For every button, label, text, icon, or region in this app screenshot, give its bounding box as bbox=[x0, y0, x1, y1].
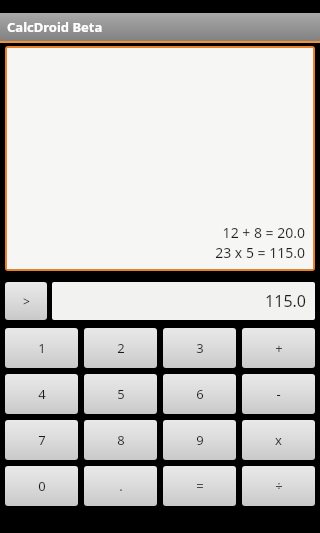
staticText: 3 bbox=[196, 339, 204, 357]
staticText: 2 bbox=[117, 339, 125, 357]
staticText: = bbox=[196, 477, 204, 495]
button[interactable]: 0 bbox=[5, 466, 78, 506]
staticText: 1 bbox=[38, 339, 46, 357]
button[interactable]: Enter expression bbox=[5, 282, 47, 320]
staticText: 6 bbox=[196, 385, 204, 403]
staticText: CalcDroid Beta bbox=[7, 18, 103, 36]
button[interactable]: + bbox=[242, 328, 315, 368]
staticText: + bbox=[275, 339, 283, 357]
staticText: ÷ bbox=[275, 477, 283, 495]
button[interactable]: 2 bbox=[84, 328, 157, 368]
staticText: > bbox=[23, 293, 30, 309]
button[interactable]: 12 + 8 = 20.0 bbox=[7, 48, 313, 269]
staticText: 12 + 8 = 20.0 bbox=[222, 223, 305, 242]
staticText: 7 bbox=[38, 431, 46, 449]
button[interactable]: 9 bbox=[163, 420, 236, 460]
staticText: - bbox=[276, 385, 281, 403]
button[interactable]: 4 bbox=[5, 374, 78, 414]
staticText: 23 x 5 = 115.0 bbox=[215, 243, 305, 262]
button[interactable]: 7 bbox=[5, 420, 78, 460]
button[interactable]: 5 bbox=[84, 374, 157, 414]
button[interactable]: - bbox=[242, 374, 315, 414]
button[interactable]: 3 bbox=[163, 328, 236, 368]
staticText: 4 bbox=[38, 385, 46, 403]
button[interactable]: 1 bbox=[5, 328, 78, 368]
button[interactable]: . bbox=[84, 466, 157, 506]
staticText: 8 bbox=[117, 431, 125, 449]
staticText: . bbox=[119, 477, 123, 495]
staticText: x bbox=[275, 431, 282, 449]
button[interactable]: ÷ bbox=[242, 466, 315, 506]
button[interactable]: x bbox=[242, 420, 315, 460]
button[interactable]: 115.0 bbox=[52, 282, 315, 320]
staticText: 5 bbox=[117, 385, 125, 403]
staticText: 115.0 bbox=[265, 290, 306, 312]
staticText: 9 bbox=[196, 431, 204, 449]
staticText: 0 bbox=[38, 477, 46, 495]
button[interactable]: = bbox=[163, 466, 236, 506]
button[interactable]: 8 bbox=[84, 420, 157, 460]
button[interactable]: 6 bbox=[163, 374, 236, 414]
